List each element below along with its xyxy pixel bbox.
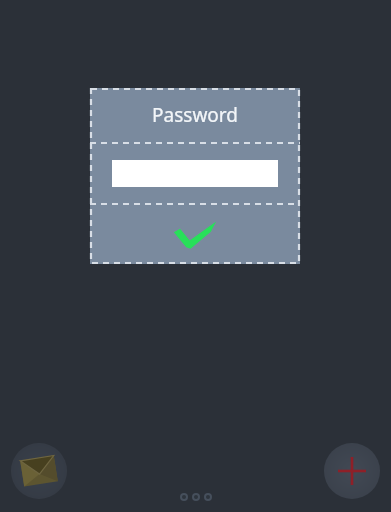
button[interactable]: Messages [11,443,67,499]
button[interactable]: Confirm password [90,205,300,264]
staticText: Password [152,102,238,128]
button[interactable]: Password [90,88,300,142]
button[interactable]: Add [324,443,380,499]
